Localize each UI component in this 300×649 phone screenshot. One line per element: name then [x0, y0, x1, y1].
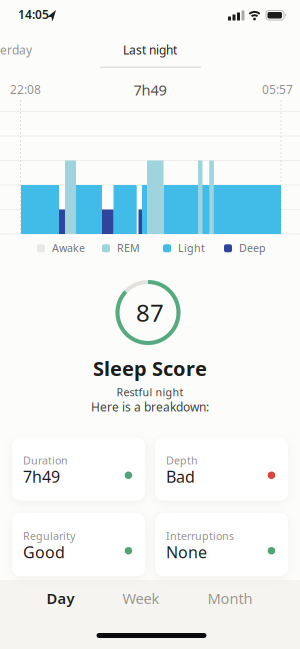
staticText: Day — [46, 588, 74, 608]
button[interactable]: Duration — [12, 437, 145, 500]
staticText: 7h49 — [23, 466, 60, 487]
staticText: Sleep Score — [93, 355, 207, 382]
button[interactable]: erday — [0, 42, 32, 58]
staticText: Month — [207, 588, 252, 608]
staticText: Restful night — [116, 385, 183, 399]
staticText: Duration — [23, 453, 68, 467]
staticText: Good — [23, 541, 65, 563]
staticText: Interruptions — [166, 529, 234, 543]
staticText: REM — [117, 241, 140, 255]
staticText: 05:57 — [262, 81, 293, 97]
staticText: Regularity — [23, 529, 75, 543]
button[interactable]: Last night — [0, 42, 300, 58]
staticText: None — [166, 541, 207, 563]
staticText: erday — [0, 42, 32, 58]
staticText: Light — [178, 241, 205, 255]
staticText: 7h49 — [133, 80, 166, 99]
button[interactable]: Day — [46, 588, 74, 608]
staticText: 22:08 — [10, 81, 41, 97]
staticText: Deep — [239, 241, 266, 255]
staticText: Awake — [52, 241, 85, 255]
staticText: Last night — [123, 42, 177, 58]
button[interactable]: Regularity — [12, 513, 145, 576]
button[interactable]: Depth — [155, 437, 288, 500]
button[interactable]: Month — [207, 588, 252, 608]
staticText: Week — [122, 588, 159, 608]
button[interactable]: Interruptions — [155, 513, 288, 576]
staticText: Here is a breakdown: — [91, 399, 209, 415]
staticText: Depth — [166, 453, 198, 467]
staticText: Bad — [166, 466, 195, 487]
staticText: 14:05 — [18, 6, 49, 22]
button[interactable]: Week — [122, 588, 159, 608]
staticText: 87 — [136, 296, 164, 328]
